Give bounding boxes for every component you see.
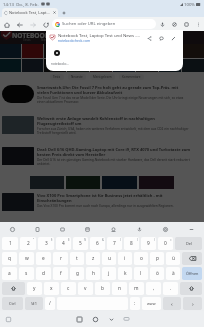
button[interactable]: 5 [73,237,88,250]
button[interactable]: 7 [107,237,122,250]
button[interactable]: e [36,252,51,265]
button[interactable]: Share [143,32,155,44]
button[interactable]: Keyboard settings [4,315,12,323]
button[interactable]: 4 [56,237,71,250]
button[interactable]: t [70,252,84,265]
button[interactable]: Öffnen [182,267,202,280]
button[interactable]: Keyboard option [25,222,50,236]
button[interactable]: j [102,267,116,280]
button[interactable]: New tab [58,8,69,17]
button[interactable]: Tabs [180,18,192,30]
button[interactable]: ü [166,252,180,265]
button[interactable]: y [27,282,42,295]
button[interactable]: 1 [2,237,18,250]
button[interactable]: i [118,252,132,265]
button[interactable]: r [53,252,68,265]
button[interactable]: Weltweit erste Anlage wandelt Kohlenstof… [2,116,191,145]
button[interactable]: Vivo X100 Pro: Smartphone ist für Busine… [2,193,191,222]
button[interactable]: q [2,252,17,265]
button[interactable]: More options [192,18,204,30]
button[interactable]: www [142,297,161,310]
button[interactable]: 6 [90,237,105,250]
button[interactable]: 0 [158,237,173,250]
button[interactable]: Keyboard option [100,222,126,236]
button[interactable]: d [36,267,51,280]
button[interactable]: 3 [38,237,54,250]
button[interactable]: . [163,282,178,295]
button[interactable]: Incognito [168,18,180,30]
button[interactable]: Suchen oder URL eingeben [52,19,156,29]
button[interactable]: p [150,252,164,265]
button[interactable]: k [118,267,132,280]
button[interactable]: z [86,252,100,265]
button[interactable]: Del [175,237,202,250]
button[interactable]: Tests [50,74,64,80]
button[interactable]: Reload [39,18,52,31]
button[interactable]: Hide keyboard [119,312,133,326]
button[interactable]: Search with this suggestion [155,32,167,44]
button[interactable]: Keyboard option [126,222,152,236]
button[interactable] [90,59,112,72]
button[interactable]: : [130,297,140,310]
button[interactable]: Edit query [167,32,179,44]
button[interactable] [136,59,158,72]
button[interactable]: u [102,252,116,265]
button[interactable]: Kommentare [119,74,144,80]
button[interactable]: h [86,267,100,280]
button[interactable]: m [129,282,144,295]
button[interactable] [182,59,204,72]
button[interactable]: v [78,282,93,295]
button[interactable]: Deal: Dell G16 QHD-Gaming-Laptop mit Cor… [2,147,191,176]
button[interactable] [67,59,89,72]
button[interactable]: ä [166,267,180,280]
button[interactable]: Recents [71,311,87,327]
button[interactable]: , [146,282,161,295]
button[interactable]: Ctrl [2,297,23,310]
button[interactable]: ö [150,267,164,280]
button[interactable]: Shift [2,282,25,295]
button[interactable]: x [44,282,59,295]
button[interactable]: Smartwatch-Uhr: Die Fossil 7 Pro holt ge… [2,85,191,114]
button[interactable]: Neueste [68,74,86,80]
button[interactable]: Notebook Test, Laptop T [2,8,58,17]
button[interactable]: › [183,297,202,310]
button[interactable]: Backspace [182,252,202,265]
button[interactable]: c [61,282,76,295]
button[interactable]: w [19,252,34,265]
button[interactable]: Keyboard option [178,222,204,236]
button[interactable]: Keyboard option [50,222,75,236]
button[interactable]: 2 [20,237,36,250]
button[interactable]: Back [13,18,26,31]
button[interactable]: Home [87,311,103,327]
button[interactable]: Keyboard option [0,222,25,236]
button[interactable]: ‹ [163,297,181,310]
button[interactable]: l [134,267,148,280]
button[interactable]: s [19,267,34,280]
button[interactable]: 9 [141,237,156,250]
button[interactable]: / [45,297,55,310]
button[interactable]: Shift [180,282,202,295]
button[interactable] [182,44,204,58]
button[interactable] [113,59,135,72]
button[interactable]: notebookc... [46,45,183,71]
button[interactable] [44,59,66,72]
button[interactable]: n [112,282,127,295]
button[interactable]: Back [103,311,119,327]
button[interactable]: Voice search [156,18,168,30]
button[interactable]: f [53,267,68,280]
button[interactable]: Meistgelesen [90,74,115,80]
button[interactable]: Keyboard option [75,222,100,236]
button[interactable] [44,44,66,58]
